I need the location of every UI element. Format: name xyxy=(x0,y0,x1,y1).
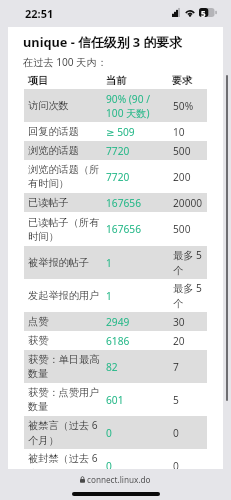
staticText: unique - 信任级别 3 的要求 xyxy=(23,33,182,50)
staticText: 要求 xyxy=(172,74,193,87)
staticText: 0 xyxy=(173,426,203,440)
staticText: 浏览的话题（所有时间） xyxy=(28,163,102,190)
staticText: 7720 xyxy=(106,144,161,158)
staticText: 500 xyxy=(173,222,203,236)
staticText: 0 xyxy=(106,426,161,440)
staticText: 30 xyxy=(173,315,203,329)
staticText: 1 xyxy=(106,289,161,303)
button[interactable]: 被禁言（过去 6 个月） xyxy=(24,416,207,449)
button[interactable]: 浏览的话题 xyxy=(24,141,207,160)
staticText: 601 xyxy=(106,393,161,407)
staticText: 已读帖子 xyxy=(28,196,102,209)
other: Battery xyxy=(199,8,217,17)
staticText: 获赞 xyxy=(28,334,102,347)
button[interactable]: 浏览的话题（所有时间） xyxy=(24,160,207,193)
staticText: 20000 xyxy=(173,196,203,210)
staticText: 7 xyxy=(173,360,203,374)
staticText: 最多 5 个 xyxy=(173,248,203,277)
staticText: 被封禁（过去 6 个月） xyxy=(28,451,102,480)
button[interactable]: 被举报的帖子 xyxy=(24,246,207,279)
staticText: 167656 xyxy=(106,222,161,236)
staticText: 22:51 xyxy=(25,6,54,21)
button[interactable]: 被封禁（过去 6 个月） xyxy=(24,449,207,482)
button[interactable]: 获赞 xyxy=(24,331,207,350)
staticText: 200 xyxy=(173,170,203,184)
staticText: connect.linux.do xyxy=(87,474,151,485)
staticText: 当前 xyxy=(106,74,127,87)
staticText: 500 xyxy=(173,144,203,158)
button[interactable]: 已读帖子（所有时间） xyxy=(24,212,207,246)
other: Cellular signal xyxy=(172,8,180,17)
staticText: 82 xyxy=(106,360,161,374)
button[interactable]: 发起举报的用户 xyxy=(24,279,207,312)
staticText: 回复的话题 xyxy=(28,125,102,138)
button[interactable]: 点赞 xyxy=(24,312,207,331)
staticText: 2949 xyxy=(106,315,161,329)
staticText: 90% (90 / 100 天数) xyxy=(106,92,161,120)
staticText: ≥ 509 xyxy=(106,125,161,139)
button[interactable]: 获赞：点赞用户数量 xyxy=(24,383,207,416)
staticText: 7720 xyxy=(106,170,161,184)
staticText: 已读帖子（所有时间） xyxy=(28,216,102,243)
staticText: 被举报的帖子 xyxy=(28,256,102,269)
staticText: 167656 xyxy=(106,196,161,210)
staticText: 50% xyxy=(173,99,203,113)
staticText: 在过去 100 天内： xyxy=(23,55,107,69)
button[interactable]: 访问次数 xyxy=(24,89,207,122)
staticText: 5 xyxy=(201,8,206,17)
button[interactable]: 已读帖子 xyxy=(24,193,207,212)
staticText: 获赞：单日最高数量 xyxy=(28,353,102,380)
staticText: 1 xyxy=(106,256,161,270)
staticText: 6186 xyxy=(106,334,161,348)
staticText: 5 xyxy=(173,393,203,407)
staticText: 0 xyxy=(173,459,203,473)
button[interactable]: 回复的话题 xyxy=(24,122,207,141)
staticText: 10 xyxy=(173,125,203,139)
staticText: 获赞：点赞用户数量 xyxy=(28,386,102,413)
staticText: 浏览的话题 xyxy=(28,144,102,157)
other: Wi-Fi xyxy=(185,8,195,17)
button[interactable]: 获赞：单日最高数量 xyxy=(24,350,207,383)
staticText: 点赞 xyxy=(28,315,102,328)
staticText: 最多 5 个 xyxy=(173,281,203,310)
staticText: 0 xyxy=(106,459,161,473)
staticText: 项目 xyxy=(28,74,49,87)
staticText: 发起举报的用户 xyxy=(28,289,102,302)
staticText: 访问次数 xyxy=(28,99,102,112)
staticText: 20 xyxy=(173,334,203,348)
staticText: 被禁言（过去 6 个月） xyxy=(28,418,102,447)
